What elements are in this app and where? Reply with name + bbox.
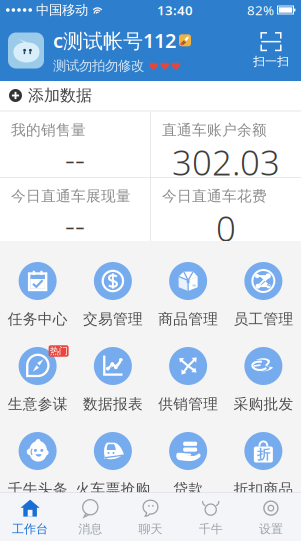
button[interactable]: 工作台: [0, 493, 60, 541]
staticText: 生意参谋: [8, 395, 68, 413]
button[interactable]: 交易管理: [75, 262, 150, 347]
staticText: 添加数据: [28, 86, 92, 105]
staticText: 火车票抢购: [75, 480, 150, 498]
button[interactable]: 千牛头条: [0, 432, 75, 517]
staticText: 工作台: [12, 522, 48, 536]
staticText: 千牛: [199, 522, 223, 536]
button[interactable]: 添加数据: [0, 81, 301, 110]
button[interactable]: 扫一扫: [248, 28, 294, 72]
staticText: 302.03: [172, 139, 280, 185]
button[interactable]: 聊天: [120, 493, 181, 541]
button[interactable]: 折: [226, 432, 301, 517]
button[interactable]: 火车票抢购: [75, 432, 150, 517]
staticText: 商品管理: [158, 310, 218, 328]
staticText: 我的销售量: [11, 121, 86, 139]
staticText: 直通车账户余额: [162, 121, 267, 139]
staticText: 设置: [259, 522, 283, 536]
staticText: 交易管理: [83, 310, 143, 328]
staticText: 今日直通车花费: [162, 187, 267, 205]
staticText: --: [65, 139, 85, 180]
button[interactable]: 热门: [0, 347, 75, 432]
button[interactable]: 员工管理: [226, 262, 301, 347]
button[interactable]: 贷款: [150, 432, 226, 517]
staticText: 中国移动: [36, 2, 88, 18]
staticText: 供销管理: [158, 395, 218, 413]
staticText: 扫一扫: [253, 54, 289, 69]
button[interactable]: 商品管理: [150, 262, 226, 347]
button[interactable]: 数据报表: [75, 347, 150, 432]
staticText: 千牛头条: [8, 480, 68, 498]
staticText: 采购批发: [233, 395, 293, 413]
staticText: 热门: [50, 345, 68, 357]
button[interactable]: 设置: [241, 493, 301, 541]
staticText: 消息: [78, 522, 102, 536]
button[interactable]: 任务中心: [0, 262, 75, 347]
staticText: 贷款: [173, 480, 203, 498]
button[interactable]: 消息: [60, 493, 120, 541]
staticText: 聊天: [138, 522, 162, 536]
staticText: 折扣商品: [233, 480, 293, 498]
button[interactable]: 供销管理: [150, 347, 226, 432]
staticText: c测试帐号112: [53, 27, 176, 54]
staticText: 任务中心: [8, 310, 68, 328]
staticText: 82%: [247, 1, 274, 19]
button[interactable]: 采购批发: [226, 347, 301, 432]
staticText: 0: [216, 205, 236, 251]
staticText: 测试勿拍勿修改: [53, 58, 144, 74]
staticText: 13:40: [157, 1, 193, 19]
staticText: 数据报表: [83, 395, 143, 413]
staticText: --: [65, 205, 85, 246]
staticText: 折: [257, 446, 270, 463]
staticText: 今日直通车展现量: [11, 187, 131, 205]
button[interactable]: 千牛: [181, 493, 241, 541]
staticText: 员工管理: [233, 310, 293, 328]
